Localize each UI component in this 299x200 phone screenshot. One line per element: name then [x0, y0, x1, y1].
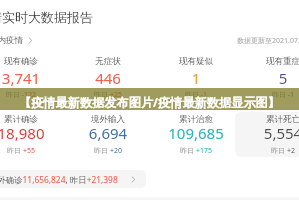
staticText: 现有确诊 — [0, 56, 65, 67]
staticText: 现有疑似 — [152, 56, 240, 67]
button[interactable] — [64, 51, 152, 101]
button[interactable] — [0, 51, 65, 101]
staticText: 无症状 — [64, 56, 152, 67]
staticText: 昨日 +25 — [64, 90, 152, 100]
staticText: 5 — [239, 68, 299, 88]
staticText: 累计确诊 — [0, 114, 65, 125]
button[interactable] — [152, 51, 240, 101]
staticText: 昨日 -1 — [152, 90, 240, 100]
staticText: 昨日 -122 — [0, 90, 65, 100]
staticText: 昨日 +55 — [0, 146, 65, 156]
button[interactable] — [239, 51, 299, 101]
button[interactable] — [64, 109, 152, 157]
staticText: 疫情实时大数据报告 — [0, 9, 93, 25]
staticText: 【疫情最新数据发布图片/疫情最新数据显示图】 — [19, 94, 280, 111]
staticText: 数据更新至2021.07.05 — [237, 36, 299, 46]
staticText: 累计死亡 — [239, 114, 299, 125]
staticText: 18,980 — [0, 123, 65, 143]
staticText: 109,685 — [152, 123, 240, 143]
staticText: 境外输入 — [64, 114, 152, 125]
staticText: 昨日 +2 — [239, 146, 299, 156]
button[interactable] — [0, 109, 65, 157]
button[interactable] — [239, 109, 299, 157]
button[interactable]: 国内疫情 — [0, 35, 34, 46]
staticText: 3,741 — [0, 68, 65, 88]
staticText: 累计治愈 — [152, 114, 240, 125]
staticText: 5,554 — [239, 123, 299, 143]
staticText: 6,694 — [64, 123, 152, 143]
staticText: 446 — [64, 68, 152, 88]
staticText: 现有重症 — [239, 56, 299, 67]
staticText: 国内疫情 — [0, 35, 23, 46]
staticText: 昨日 +175 — [152, 146, 240, 156]
staticText: 1 — [152, 68, 240, 88]
staticText: 昨日 +20 — [64, 146, 152, 156]
staticText: 境外确诊11,656,824, 昨日+21,398 — [0, 174, 118, 185]
button[interactable] — [152, 109, 240, 157]
staticText: 昨日 -1 — [239, 90, 299, 100]
button[interactable]: 境外确诊11,656,824, 昨日+21,398 — [0, 170, 146, 188]
